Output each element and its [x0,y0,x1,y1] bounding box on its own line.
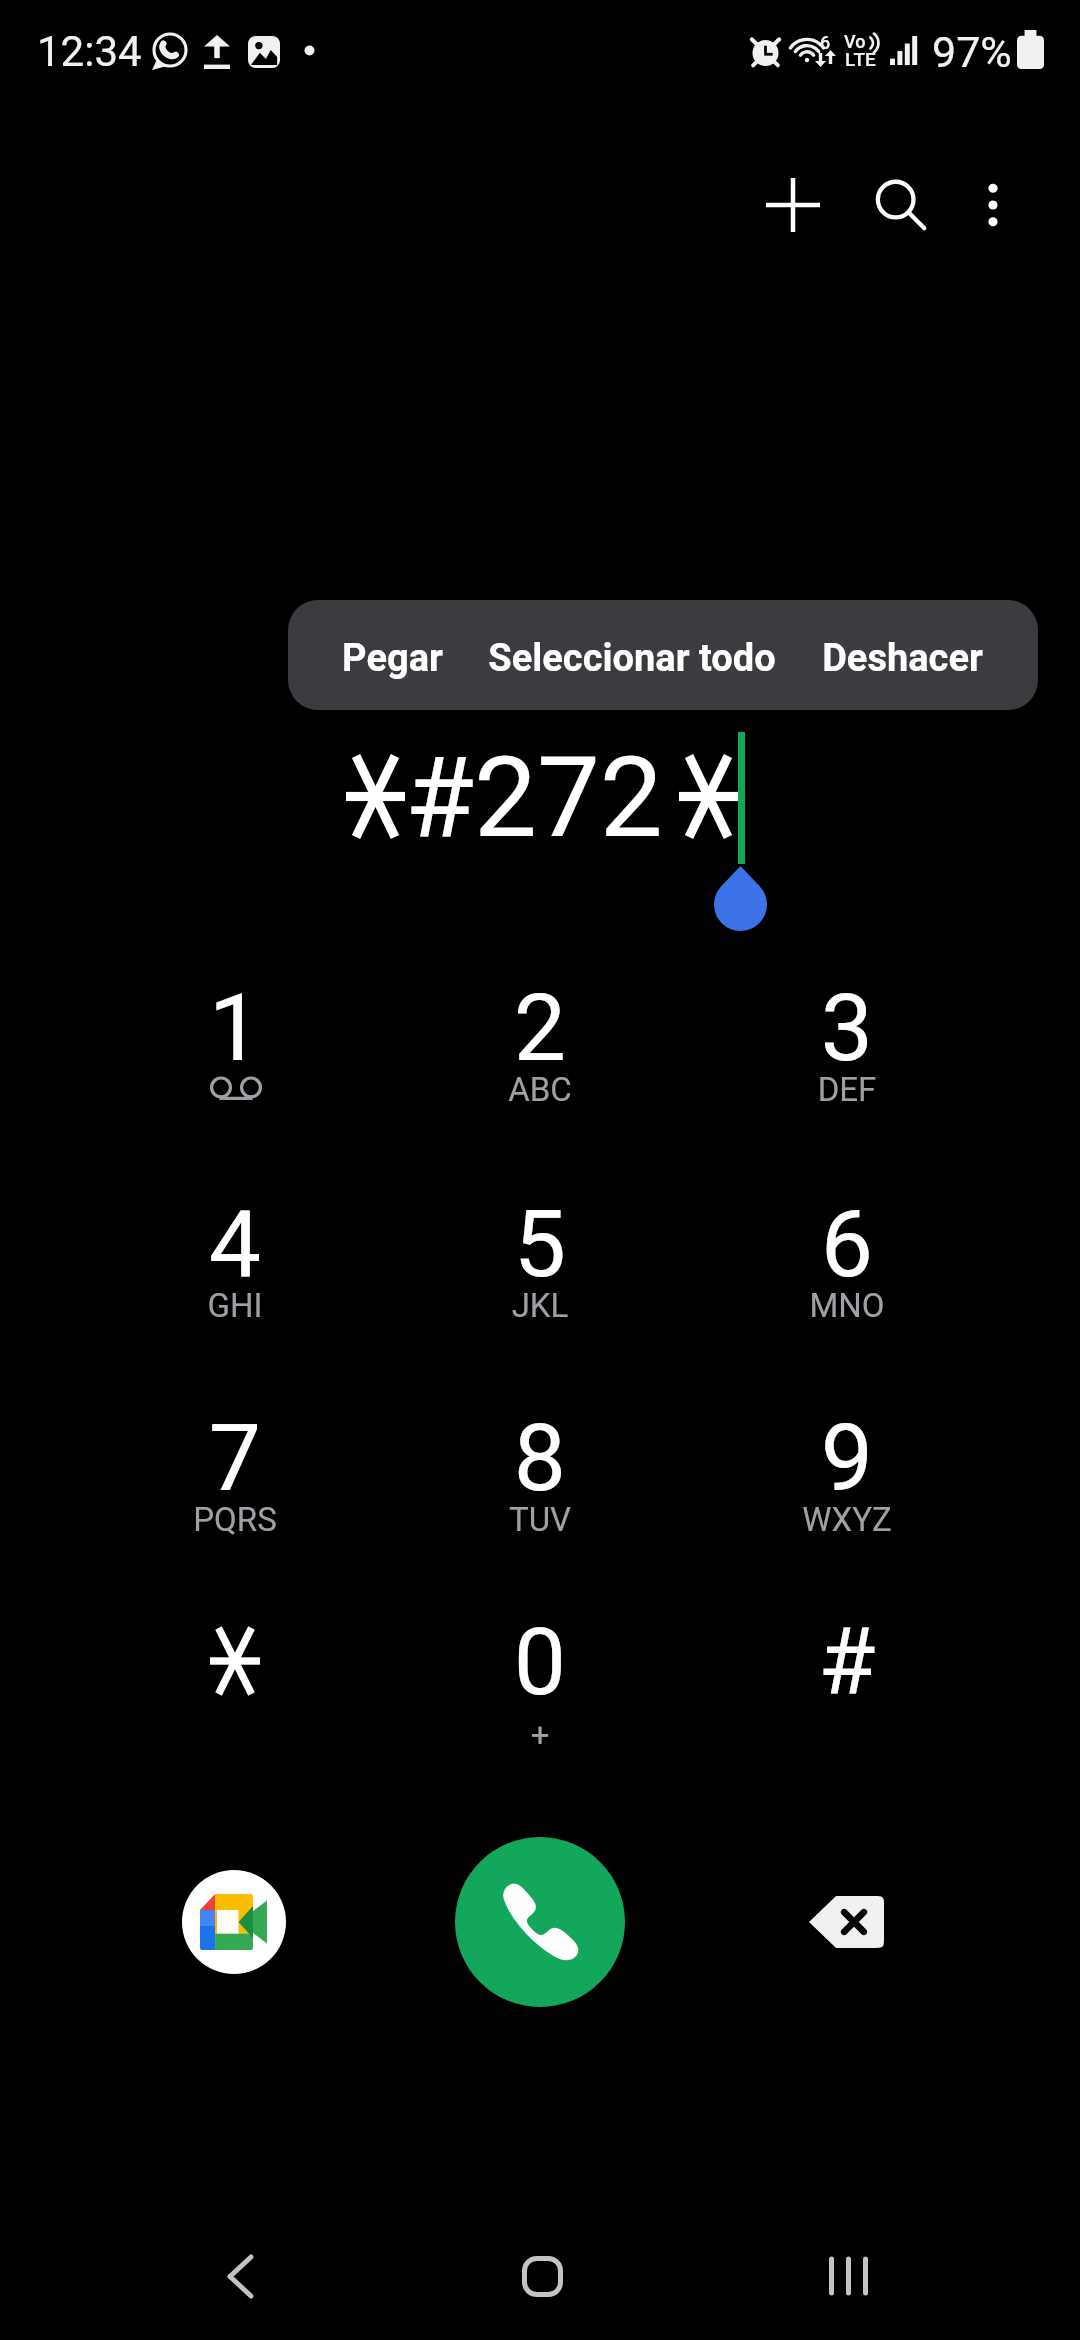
staticText: JKL [340,1286,740,1325]
button[interactable]: Recents [798,2226,898,2326]
button[interactable]: Key 0 [388,1587,692,1787]
button[interactable]: Pegar [288,600,496,710]
button[interactable]: Deshacer [767,600,1038,710]
button[interactable]: Key 1 [83,953,387,1153]
button[interactable]: Key 7 [83,1383,387,1583]
button[interactable]: Back [190,2226,290,2326]
staticText: 7 [35,1404,435,1513]
staticText: 5 [340,1190,740,1299]
staticText: LTE [845,48,876,70]
staticText: 1 [35,974,435,1083]
staticText: Deshacer [822,636,983,681]
button[interactable]: Key 6 [695,1169,999,1369]
staticText: WXYZ [647,1500,1047,1539]
button[interactable]: Add contact [745,157,841,253]
staticText: TUV [340,1500,740,1539]
staticText: Pegar [342,636,443,681]
staticText: #272 [405,732,663,863]
staticText: 2 [340,974,740,1083]
button[interactable]: Home [492,2226,592,2326]
staticText: MNO [647,1286,1047,1325]
staticText: 8 [340,1404,740,1513]
staticText: 97% [932,27,1012,77]
button[interactable]: Key 3 [695,953,999,1153]
button[interactable]: Video call [182,1870,286,1974]
staticText: # [647,1608,1047,1717]
button[interactable]: Key # [695,1587,999,1787]
button[interactable]: Key 8 [388,1383,692,1583]
button[interactable]: Key * [83,1587,387,1787]
button[interactable]: Search [852,157,948,253]
staticText: 9 [647,1404,1047,1513]
button[interactable]: Key 4 [83,1169,387,1369]
button[interactable]: More options [945,157,1041,253]
button[interactable]: Backspace [776,1852,916,1992]
staticText: DEF [647,1070,1047,1109]
staticText: PQRS [35,1500,435,1539]
staticText: GHI [35,1286,435,1325]
staticText: 6 [647,1190,1047,1299]
button[interactable]: Call [455,1837,625,2007]
staticText: 0 [340,1608,740,1717]
staticText: 6 [820,32,831,53]
button[interactable]: Seleccionar todo [496,600,767,710]
staticText: + [340,1715,740,1754]
staticText: 4 [35,1190,435,1299]
button[interactable]: Key 9 [695,1383,999,1583]
staticText: 3 [647,974,1047,1083]
button[interactable]: Key 2 [388,953,692,1153]
staticText: 12:34 [37,27,142,76]
staticText: ABC [340,1070,740,1109]
staticText: Vo [844,31,866,52]
staticText: Seleccionar todo [488,636,776,681]
button[interactable]: Key 5 [388,1169,692,1369]
